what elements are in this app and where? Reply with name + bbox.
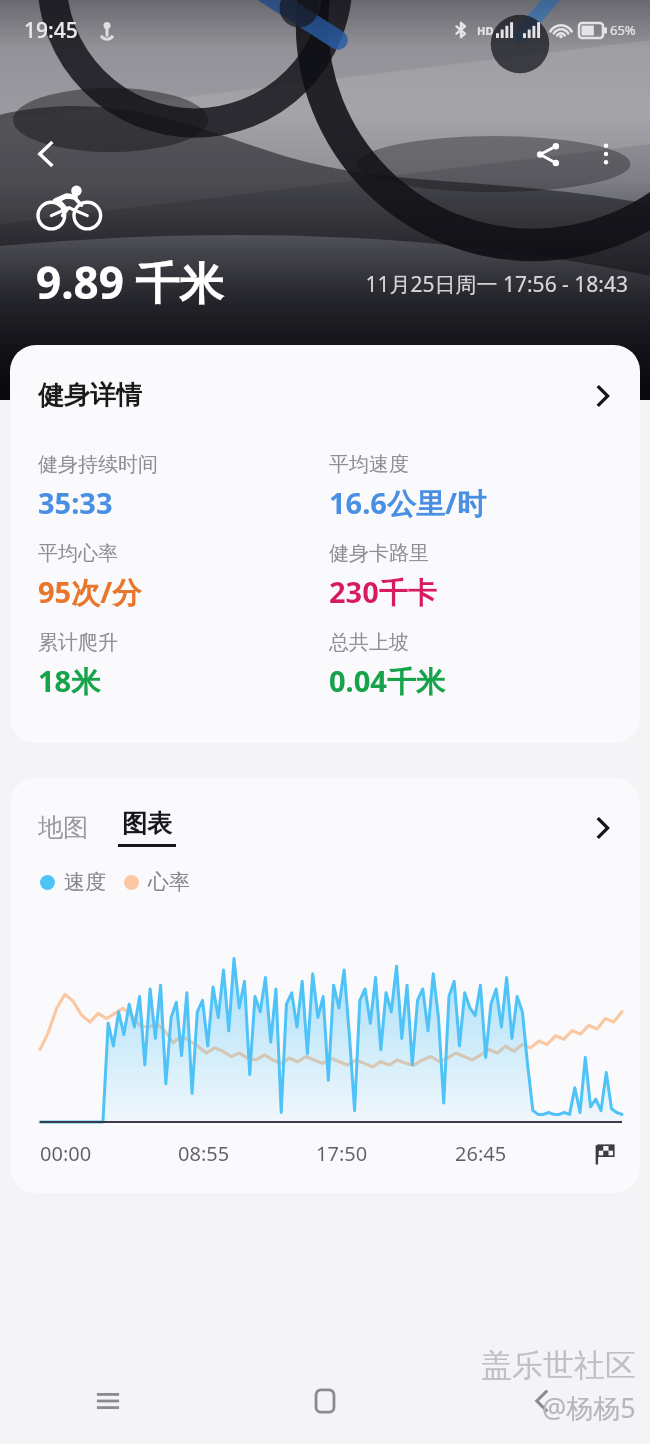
staticText: HD [477,23,494,38]
button[interactable]: Back [433,1358,650,1444]
other: Open [590,383,616,409]
staticText: 累计爬升 [38,630,118,655]
staticText: 65% [610,21,636,39]
staticText: 地图 [38,812,88,843]
staticText: 图表 [122,808,172,839]
button[interactable]: 平均速度 [329,452,620,523]
button[interactable]: More options [578,126,634,182]
staticText: 230千卡 [329,572,437,612]
button[interactable]: 总共上坡 [329,630,620,701]
button[interactable]: Back [18,126,74,182]
staticText: 健身详情 [38,379,142,412]
staticText: 健身卡路里 [329,541,429,566]
button[interactable]: Share [520,126,576,182]
staticText: 总共上坡 [329,630,409,655]
staticText: 0.04千米 [329,661,445,701]
other: Finish [594,1143,616,1165]
staticText: 26:45 [455,1140,507,1167]
staticText: 08:55 [178,1140,230,1167]
button[interactable]: 地图 [38,812,88,843]
button[interactable]: Home [216,1358,433,1444]
staticText: 00:00 [40,1140,92,1167]
button[interactable]: Open [590,815,616,841]
button[interactable]: Recent apps [0,1358,216,1444]
staticText: 18米 [38,661,101,701]
staticText: 平均速度 [329,452,409,477]
button[interactable]: 累计爬升 [38,630,329,701]
button[interactable]: 健身卡路里 [329,541,620,612]
staticText: 11月25日周一 17:56 - 18:43 [0,270,628,299]
staticText: 平均心率 [38,541,118,566]
staticText: 16.6公里/时 [329,483,486,523]
button[interactable]: 图表 [118,808,176,847]
staticText: 35:33 [38,483,113,522]
staticText: 盖乐世社区 [481,1346,636,1385]
staticText: 9.89 千米 [36,252,224,312]
button[interactable]: 平均心率 [38,541,329,612]
other: Open [590,815,616,841]
button[interactable]: 健身持续时间 [38,452,329,522]
button[interactable]: 健身详情 [10,345,640,434]
staticText: 17:50 [316,1140,368,1167]
staticText: @杨杨5 [542,1389,636,1426]
staticText: 心率 [148,869,190,895]
staticText: 95次/分 [38,572,142,612]
staticText: 速度 [64,869,106,895]
staticText: 健身持续时间 [38,452,158,477]
staticText: 19:45 [24,16,78,45]
